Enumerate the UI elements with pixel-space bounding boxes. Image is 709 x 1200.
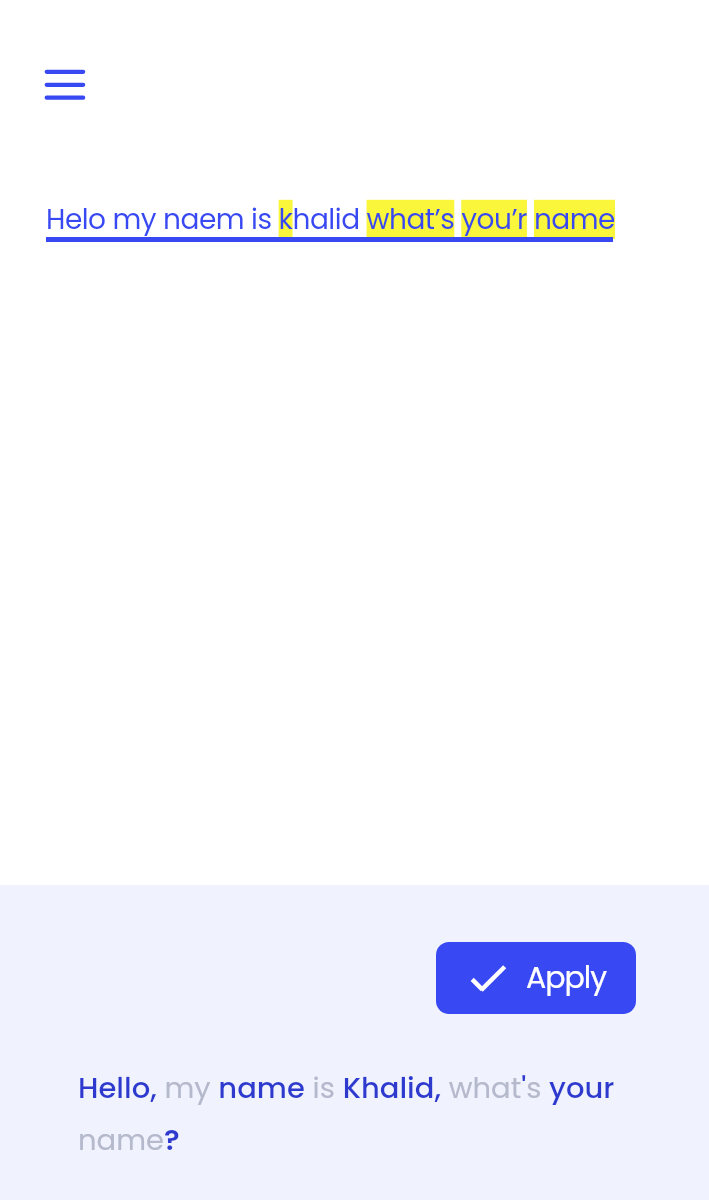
staticText: Helo my naem is khalid what’s you’r name (46, 200, 615, 239)
button[interactable]: Edit sentence (46, 200, 666, 242)
staticText: Hello, my name is Khalid, what's your na… (78, 1068, 638, 1160)
button[interactable]: Suggested correction (78, 1068, 638, 1160)
button[interactable]: Menu (30, 57, 98, 113)
staticText: Apply (526, 957, 607, 999)
button[interactable]: Apply (436, 942, 636, 1014)
